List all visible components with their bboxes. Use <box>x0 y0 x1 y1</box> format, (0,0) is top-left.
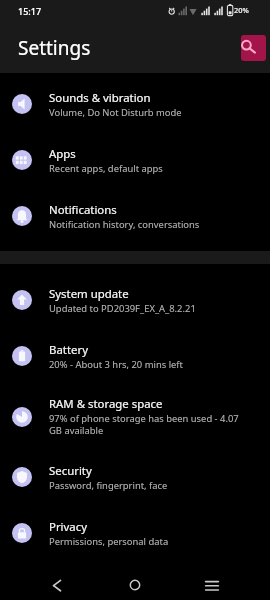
button[interactable]: Back <box>34 563 78 600</box>
staticText: 15:17 <box>18 5 42 17</box>
staticText: Battery <box>49 342 88 358</box>
staticText: System update <box>49 286 129 302</box>
staticText: Volume, Do Not Disturb mode <box>49 106 182 119</box>
button[interactable]: Security <box>0 449 270 505</box>
button[interactable]: Battery <box>0 328 270 384</box>
staticText: Notification history, conversations <box>49 218 200 231</box>
staticText: 20% <box>234 5 249 15</box>
staticText: Permissions, personal data <box>49 535 169 548</box>
button[interactable]: RAM & storage space <box>0 384 270 449</box>
button[interactable]: Notifications <box>0 188 270 244</box>
staticText: 97% of phone storage has been used - 4.0… <box>49 412 239 437</box>
staticText: Apps <box>49 146 76 162</box>
button[interactable]: System update <box>0 272 270 328</box>
button[interactable]: Recent apps <box>190 563 234 600</box>
button[interactable]: Apps <box>0 132 270 188</box>
button[interactable]: Privacy <box>0 505 270 561</box>
button[interactable]: Home <box>113 563 157 600</box>
staticText: Updated to PD2039F_EX_A_8.2.21 <box>49 302 196 315</box>
staticText: Recent apps, default apps <box>49 162 163 175</box>
staticText: Settings <box>18 35 91 61</box>
staticText: Sounds & vibration <box>49 90 151 106</box>
button[interactable]: Search <box>241 35 266 61</box>
staticText: Password, fingerprint, face <box>49 479 168 492</box>
staticText: Notifications <box>49 202 117 218</box>
staticText: RAM & storage space <box>49 396 163 412</box>
button[interactable]: Sounds & vibration <box>0 76 270 132</box>
staticText: Security <box>49 463 92 479</box>
staticText: 20% - About 3 hrs, 20 mins left <box>49 358 183 371</box>
staticText: Privacy <box>49 519 87 535</box>
